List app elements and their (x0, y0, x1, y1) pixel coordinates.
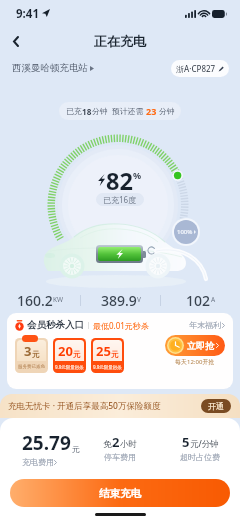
staticText: 充电费用 (22, 457, 54, 467)
staticText: 立即抢 (187, 340, 214, 351)
staticText: 最低0.01元秒杀 (93, 320, 149, 331)
staticText: 已充 (66, 106, 82, 116)
staticText: % (133, 169, 142, 181)
staticText: 分钟 (157, 106, 175, 117)
staticText: 102 (186, 291, 211, 310)
staticText: 2 (112, 433, 120, 451)
staticText: 正在充电 (94, 33, 146, 49)
staticText: 25.79 (22, 430, 71, 456)
staticText: 结束充电 (99, 487, 141, 500)
staticText: 元 (73, 350, 81, 359)
staticText: 预计还需 (110, 106, 146, 117)
staticText: 389.9 (101, 291, 137, 310)
staticText: V (137, 295, 141, 304)
staticText: 9:41 (16, 6, 39, 22)
staticText: 小时 (120, 439, 137, 450)
staticText: 5 (182, 433, 190, 451)
staticText: 23 (146, 105, 157, 117)
staticText: 分钟 (92, 106, 110, 117)
staticText: 3 (24, 342, 32, 360)
button[interactable]: 充电费用 (22, 457, 57, 467)
staticText: KW (53, 295, 64, 304)
staticText: 充电无忧卡 · 开通后享最高50万保险额度 (8, 400, 161, 412)
staticText: 元/分钟 (190, 438, 219, 450)
staticText: 年末福利 (189, 320, 221, 330)
button[interactable]: 3 (15, 338, 48, 373)
staticText: 免 (103, 439, 112, 450)
button[interactable]: 25 (91, 338, 124, 373)
button[interactable]: 开通 (201, 399, 231, 413)
staticText: 服务费已减免 (18, 364, 45, 370)
staticText: 开通 (208, 401, 224, 411)
staticText: 每天12:00开抢 (175, 358, 215, 366)
staticText: 西溪曼哈顿充电站 (12, 62, 88, 74)
staticText: 元 (32, 350, 40, 359)
staticText: 82 (106, 165, 133, 197)
staticText: 18 (82, 106, 92, 117)
staticText: 元 (72, 444, 80, 454)
staticText: 元 (111, 350, 119, 359)
staticText: 超时占位费 (180, 452, 220, 462)
staticText: 25 (96, 342, 111, 360)
staticText: 浙A·CP827 (176, 63, 216, 74)
staticText: 9.9元限量秒杀 (55, 364, 84, 370)
button[interactable]: 年末福利 (189, 320, 225, 330)
button[interactable]: 100% (174, 220, 198, 244)
staticText: 已充16度 (103, 194, 137, 205)
staticText: 20 (58, 342, 73, 360)
button[interactable]: 20 (53, 338, 86, 373)
button[interactable]: 结束充电 (10, 479, 230, 507)
button[interactable]: 浙A·CP827 (171, 60, 229, 77)
staticText: 会员秒杀入口 (27, 319, 84, 331)
staticText: 100% (177, 228, 193, 236)
button[interactable]: 西溪曼哈顿充电站 (12, 62, 94, 74)
staticText: 9.9元限量秒杀 (93, 364, 122, 370)
staticText: A (211, 295, 216, 304)
staticText: 160.2 (17, 291, 53, 310)
staticText: 停车费用 (104, 452, 136, 462)
button[interactable]: Back (4, 29, 28, 53)
button[interactable]: 立即抢 (165, 335, 225, 356)
